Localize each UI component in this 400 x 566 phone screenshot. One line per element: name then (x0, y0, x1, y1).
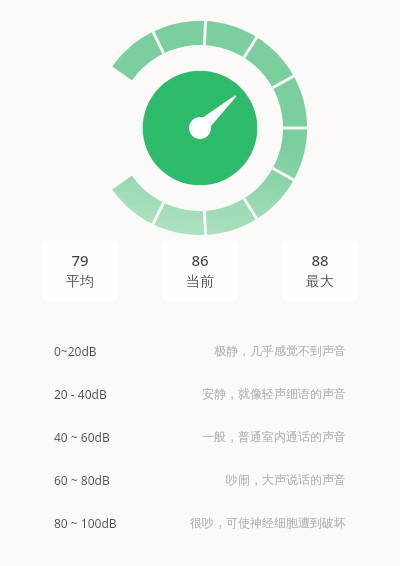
button[interactable]: 40 ~ 60dB (0, 415, 400, 458)
button[interactable]: 80 ~ 100dB (0, 501, 400, 544)
staticText: 平均 (66, 273, 94, 291)
staticText: 79 (71, 250, 89, 270)
staticText: 当前 (186, 273, 214, 291)
button[interactable]: 20 - 40dB (0, 372, 400, 415)
staticText: 88 (311, 250, 329, 270)
staticText: 20 - 40dB (54, 386, 107, 402)
staticText: 80 ~ 100dB (54, 515, 117, 531)
button[interactable]: 79 (42, 240, 118, 301)
staticText: 吵闹，大声说话的声音 (226, 472, 346, 487)
staticText: 一般，普通室内通话的声音 (202, 429, 346, 444)
staticText: 很吵，可使神经细胞遭到破坏 (190, 515, 346, 530)
staticText: 极静，几乎感觉不到声音 (214, 343, 346, 358)
button[interactable]: 86 (162, 240, 238, 301)
staticText: 40 ~ 60dB (54, 429, 110, 445)
staticText: 最大 (306, 273, 334, 291)
staticText: 安静，就像轻声细语的声音 (202, 386, 346, 401)
staticText: 0~20dB (54, 343, 97, 359)
staticText: 86 (191, 250, 209, 270)
button[interactable]: 88 (282, 240, 358, 301)
button[interactable]: 60 ~ 80dB (0, 458, 400, 501)
staticText: 60 ~ 80dB (54, 472, 110, 488)
button[interactable]: 0~20dB (0, 329, 400, 372)
other: Noise level gauge, 86 decibels (84, 16, 316, 240)
